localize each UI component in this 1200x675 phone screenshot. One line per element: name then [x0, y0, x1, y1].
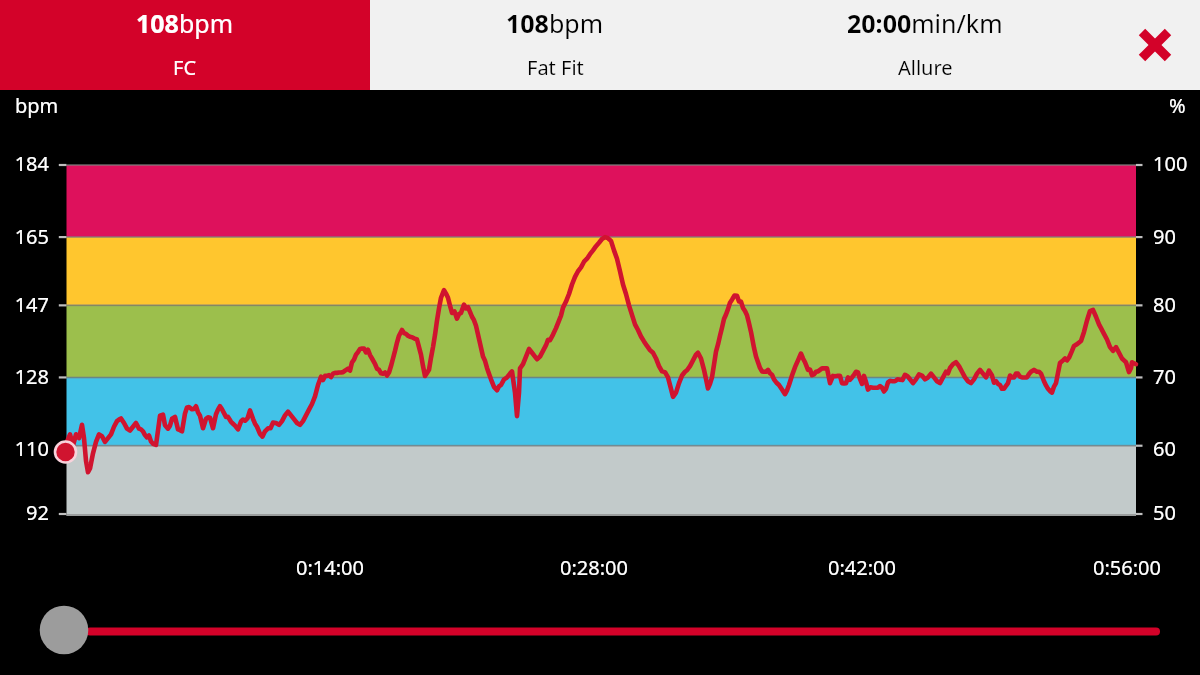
staticText: 20:00min/km: [847, 6, 1003, 40]
staticText: FC: [173, 54, 197, 81]
staticText: 100: [1153, 150, 1188, 177]
staticText: 108bpm: [136, 6, 234, 40]
staticText: Fat Fit: [527, 54, 584, 81]
button[interactable]: Close: [1110, 0, 1200, 90]
button[interactable]: 108bpm: [0, 0, 370, 90]
staticText: 108bpm: [506, 6, 604, 40]
button[interactable]: 108bpm: [370, 0, 740, 90]
staticText: 92: [0, 499, 49, 526]
staticText: 0:42:00: [792, 554, 932, 581]
staticText: 90: [1153, 223, 1176, 250]
staticText: 147: [0, 291, 49, 318]
staticText: 128: [0, 363, 49, 390]
staticText: 50: [1153, 499, 1176, 526]
staticText: %: [1169, 92, 1186, 119]
staticText: 110: [0, 435, 49, 462]
staticText: bpm: [15, 92, 59, 119]
staticText: 80: [1153, 291, 1176, 318]
staticText: 0:56:00: [1057, 554, 1197, 581]
staticText: 184: [0, 150, 49, 177]
staticText: Allure: [898, 54, 953, 81]
staticText: 70: [1153, 363, 1176, 390]
button[interactable]: 20:00min/km: [740, 0, 1110, 90]
staticText: 165: [0, 223, 49, 250]
button[interactable]: Session timeline scrubber: [30, 600, 1170, 662]
staticText: 60: [1153, 435, 1176, 462]
staticText: 0:14:00: [260, 554, 400, 581]
staticText: 0:28:00: [524, 554, 664, 581]
